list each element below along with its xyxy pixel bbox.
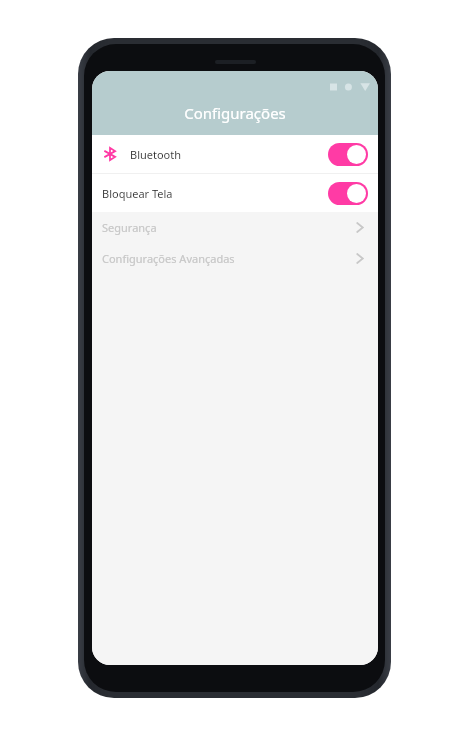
button[interactable]: Configurações Avançadas — [92, 243, 378, 274]
button[interactable]: Bluetooth — [92, 135, 378, 173]
staticText: Configurações Avançadas — [102, 251, 235, 266]
staticText: Bluetooth — [130, 147, 182, 162]
staticText: Bloquear Tela — [102, 186, 173, 201]
button[interactable]: Bluetooth toggle, on — [328, 143, 368, 166]
button[interactable]: Segurança — [92, 212, 378, 243]
button[interactable]: Bloquear Tela toggle, on — [328, 182, 368, 205]
staticText: Configurações — [184, 103, 286, 123]
button[interactable]: Bloquear Tela — [92, 174, 378, 212]
staticText: Segurança — [102, 220, 157, 235]
